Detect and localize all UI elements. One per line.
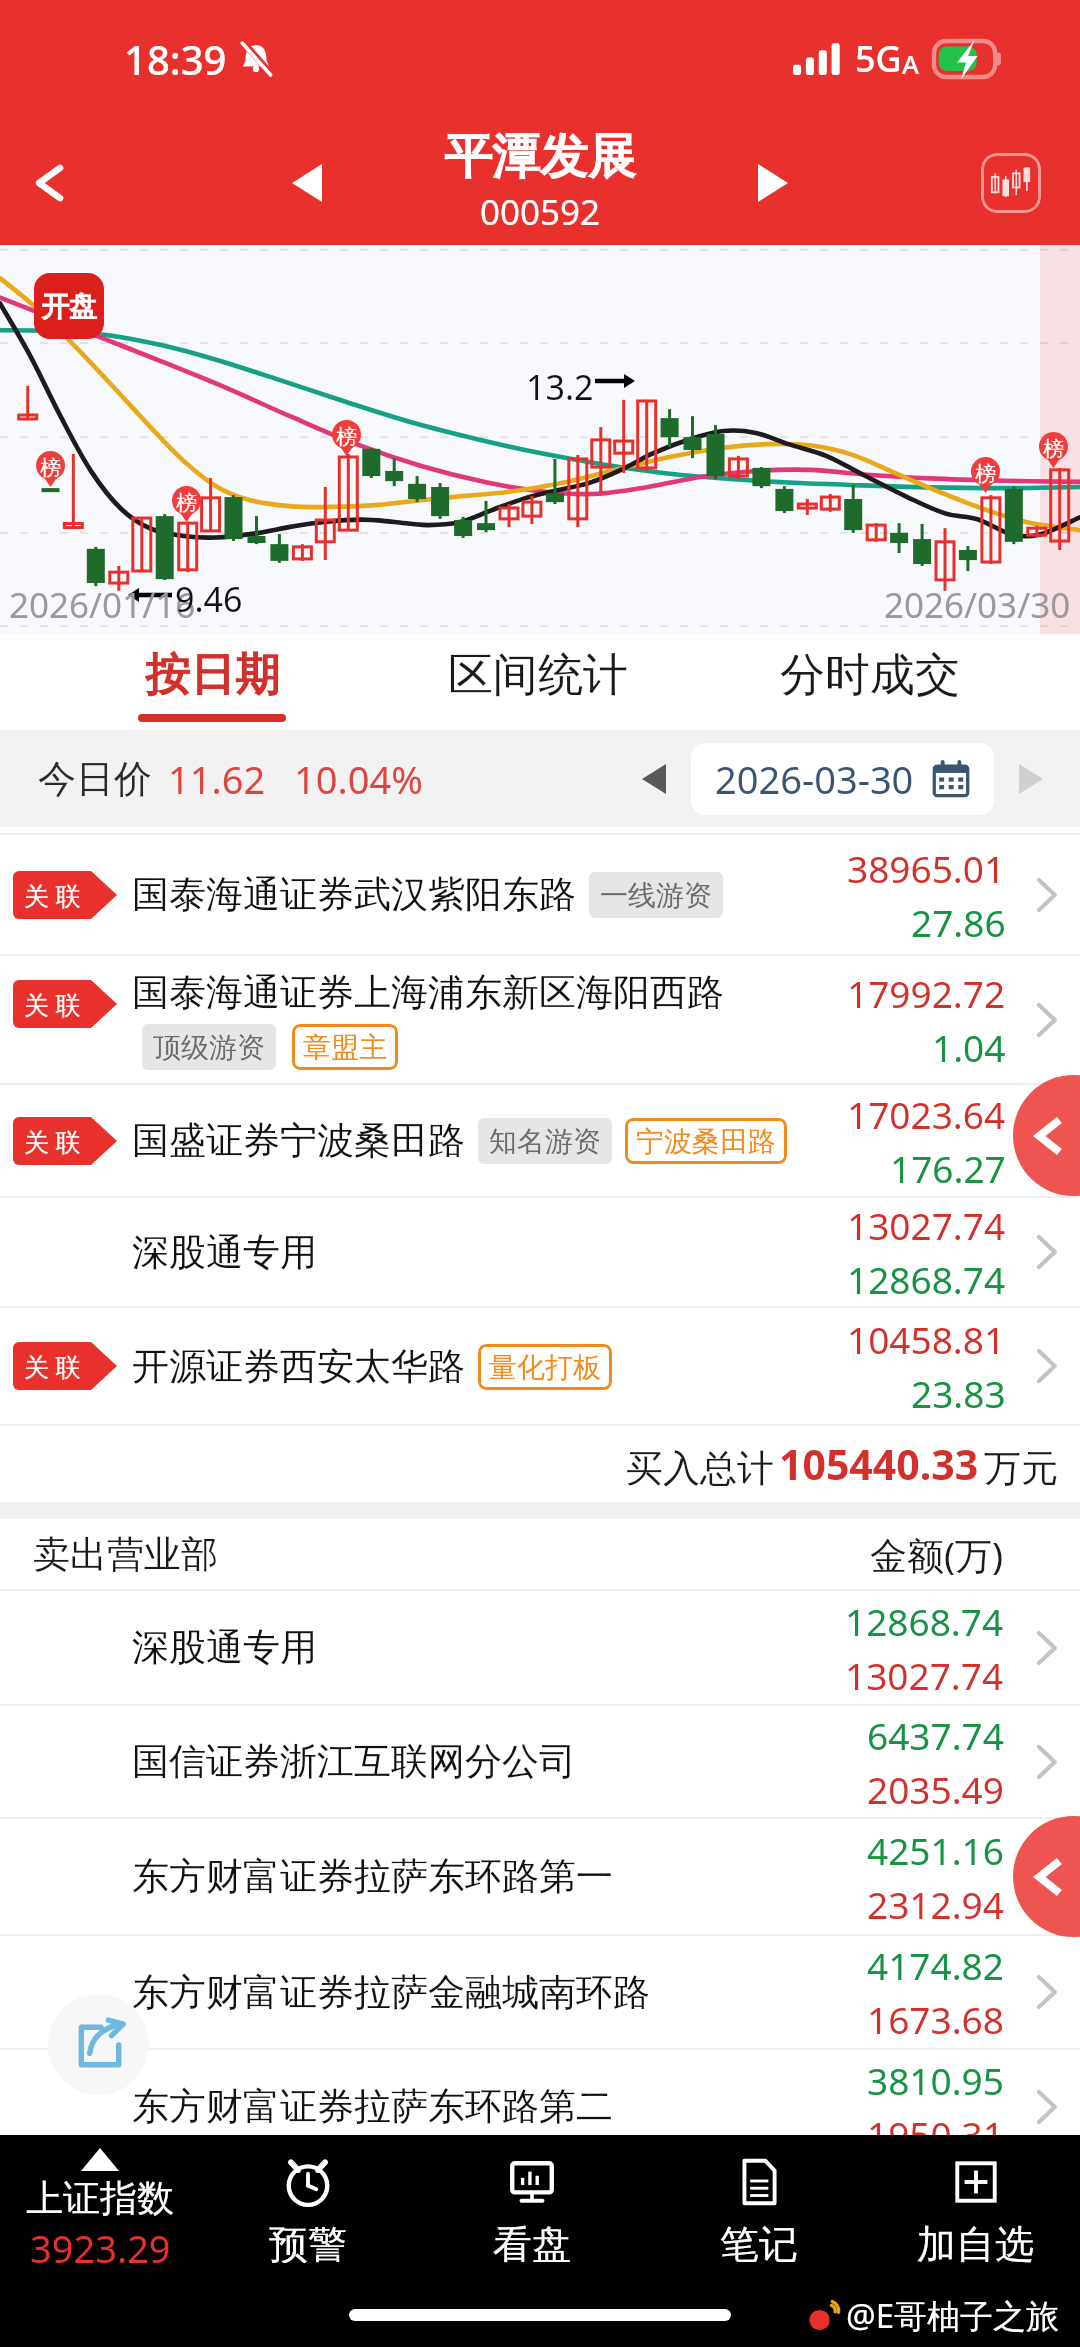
staticText: 2035.49 — [867, 1764, 1004, 1814]
button[interactable]: Expand panel — [1013, 1075, 1080, 1196]
button[interactable]: 笔记 — [648, 2135, 870, 2263]
staticText: 6437.74 — [867, 1710, 1004, 1760]
staticText: 章盟主 — [303, 1030, 387, 1065]
staticText: 笔记 — [720, 2220, 798, 2263]
staticText: 5G — [855, 34, 902, 83]
staticText: 17023.64 — [847, 1089, 1006, 1139]
staticText: 榜 — [40, 455, 61, 481]
staticText: 上证指数 — [26, 2175, 174, 2222]
staticText: 预警 — [269, 2220, 347, 2263]
staticText: 13027.74 — [847, 1200, 1006, 1250]
staticText: @E哥柚子之旅 — [846, 2293, 1060, 2338]
staticText: 4174.82 — [867, 1940, 1004, 1990]
staticText: 000592 — [480, 188, 601, 236]
staticText: 榜 — [975, 461, 996, 487]
staticText: 卖出营业部 — [33, 1531, 218, 1578]
staticText: 2026-03-30 — [715, 753, 914, 805]
staticText: 金额(万) — [870, 1529, 1004, 1580]
staticText: 买入总计 — [626, 1445, 774, 1492]
button[interactable]: 关 联 — [0, 1085, 1080, 1196]
button[interactable]: 开盘 — [34, 273, 104, 339]
staticText: 4251.16 — [867, 1825, 1004, 1875]
button[interactable]: 深股通专用 — [0, 1591, 1080, 1704]
button[interactable]: 加自选 — [870, 2135, 1080, 2263]
staticText: 国盛证券宁波桑田路 — [132, 1117, 465, 1164]
staticText: 分时成交 — [780, 647, 960, 704]
button[interactable]: 按日期 — [138, 634, 286, 730]
staticText: 深股通专用 — [132, 1624, 317, 1671]
button[interactable]: Back — [14, 147, 86, 219]
button[interactable]: 上证指数 — [0, 2135, 200, 2263]
staticText: 顶级游资 — [153, 1030, 265, 1065]
staticText: 国泰海通证券武汉紫阳东路 — [132, 871, 576, 918]
staticText: 国信证券浙江互联网分公司 — [132, 1738, 576, 1785]
staticText: 1.04 — [932, 1022, 1006, 1072]
button[interactable]: 关 联 — [0, 835, 1080, 954]
staticText: 2312.94 — [867, 1879, 1004, 1929]
staticText: 9.46 — [175, 576, 243, 622]
staticText: 深股通专用 — [132, 1229, 317, 1276]
staticText: 105440.33 — [779, 1436, 979, 1492]
staticText: 平潭发展 — [444, 127, 636, 187]
staticText: 1673.68 — [867, 1994, 1004, 2044]
staticText: 17992.72 — [847, 968, 1006, 1018]
staticText: 区间统计 — [448, 647, 628, 704]
button[interactable]: K line chart — [981, 153, 1041, 213]
button[interactable]: 预警 — [200, 2135, 416, 2263]
staticText: 1950.31 — [867, 2109, 1004, 2159]
staticText: 13027.74 — [845, 1650, 1004, 1700]
staticText: 东方财富证券拉萨东环路第二 — [132, 2083, 613, 2130]
staticText: 关 联 — [24, 1124, 81, 1158]
staticText: 开源证券西安太华路 — [132, 1343, 465, 1390]
staticText: 量化打板 — [489, 1350, 601, 1385]
staticText: 176.27 — [890, 1143, 1006, 1193]
button[interactable]: 关 联 — [0, 1308, 1080, 1424]
button[interactable]: 国信证券浙江互联网分公司 — [0, 1706, 1080, 1817]
staticText: 3923.29 — [30, 2222, 171, 2263]
staticText: 12868.74 — [845, 1596, 1004, 1646]
staticText: 18:39 — [124, 32, 227, 86]
staticText: 2026/03/30 — [884, 581, 1071, 629]
button[interactable]: 分时成交 — [772, 634, 967, 730]
staticText: 国泰海通证券上海浦东新区海阳西路 — [132, 969, 724, 1016]
button[interactable]: 东方财富证券拉萨金融城南环路 — [0, 1936, 1080, 2048]
staticText: 关 联 — [24, 1349, 81, 1383]
staticText: 榜 — [336, 424, 357, 450]
button[interactable]: Share — [48, 1994, 149, 2095]
staticText: 榜 — [176, 490, 197, 516]
staticText: 关 联 — [24, 878, 81, 912]
button[interactable]: Next stock — [738, 148, 808, 218]
button[interactable]: 东方财富证券拉萨东环路第二 — [0, 2050, 1080, 2163]
button[interactable]: 看盘 — [416, 2135, 648, 2263]
staticText: 加自选 — [917, 2220, 1034, 2263]
button[interactable]: Next day — [1004, 752, 1058, 806]
button[interactable]: 深股通专用 — [0, 1198, 1080, 1306]
staticText: 按日期 — [145, 647, 280, 704]
button[interactable]: 关 联 — [0, 956, 1080, 1083]
staticText: 东方财富证券拉萨东环路第一 — [132, 1853, 613, 1900]
button[interactable]: Expand panel — [1013, 1816, 1080, 1937]
staticText: 一线游资 — [600, 878, 712, 913]
button[interactable]: 区间统计 — [440, 634, 635, 730]
staticText: 2026/01/16 — [9, 581, 196, 629]
button[interactable]: 2026-03-30 — [691, 743, 994, 815]
staticText: 12868.74 — [847, 1254, 1006, 1304]
staticText: 3810.95 — [867, 2055, 1004, 2105]
staticText: 13.2 — [526, 364, 594, 410]
staticText: 关 联 — [24, 987, 81, 1021]
staticText: 38965.01 — [847, 843, 1006, 893]
staticText: 知名游资 — [489, 1124, 601, 1159]
staticText: 宁波桑田路 — [636, 1124, 776, 1159]
button[interactable]: 东方财富证券拉萨东环路第一 — [0, 1819, 1080, 1934]
staticText: 榜 — [1043, 436, 1064, 462]
staticText: 万元 — [984, 1445, 1058, 1492]
staticText: 今日价 — [38, 755, 152, 803]
staticText: 东方财富证券拉萨金融城南环路 — [132, 1969, 650, 2016]
button[interactable]: Previous stock — [272, 148, 342, 218]
staticText: 27.86 — [911, 897, 1006, 947]
staticText: 看盘 — [493, 2220, 571, 2263]
staticText: 开盘 — [41, 289, 97, 324]
staticText: 10458.81 — [847, 1314, 1006, 1364]
staticText: A — [902, 46, 920, 81]
button[interactable]: Previous day — [627, 752, 681, 806]
